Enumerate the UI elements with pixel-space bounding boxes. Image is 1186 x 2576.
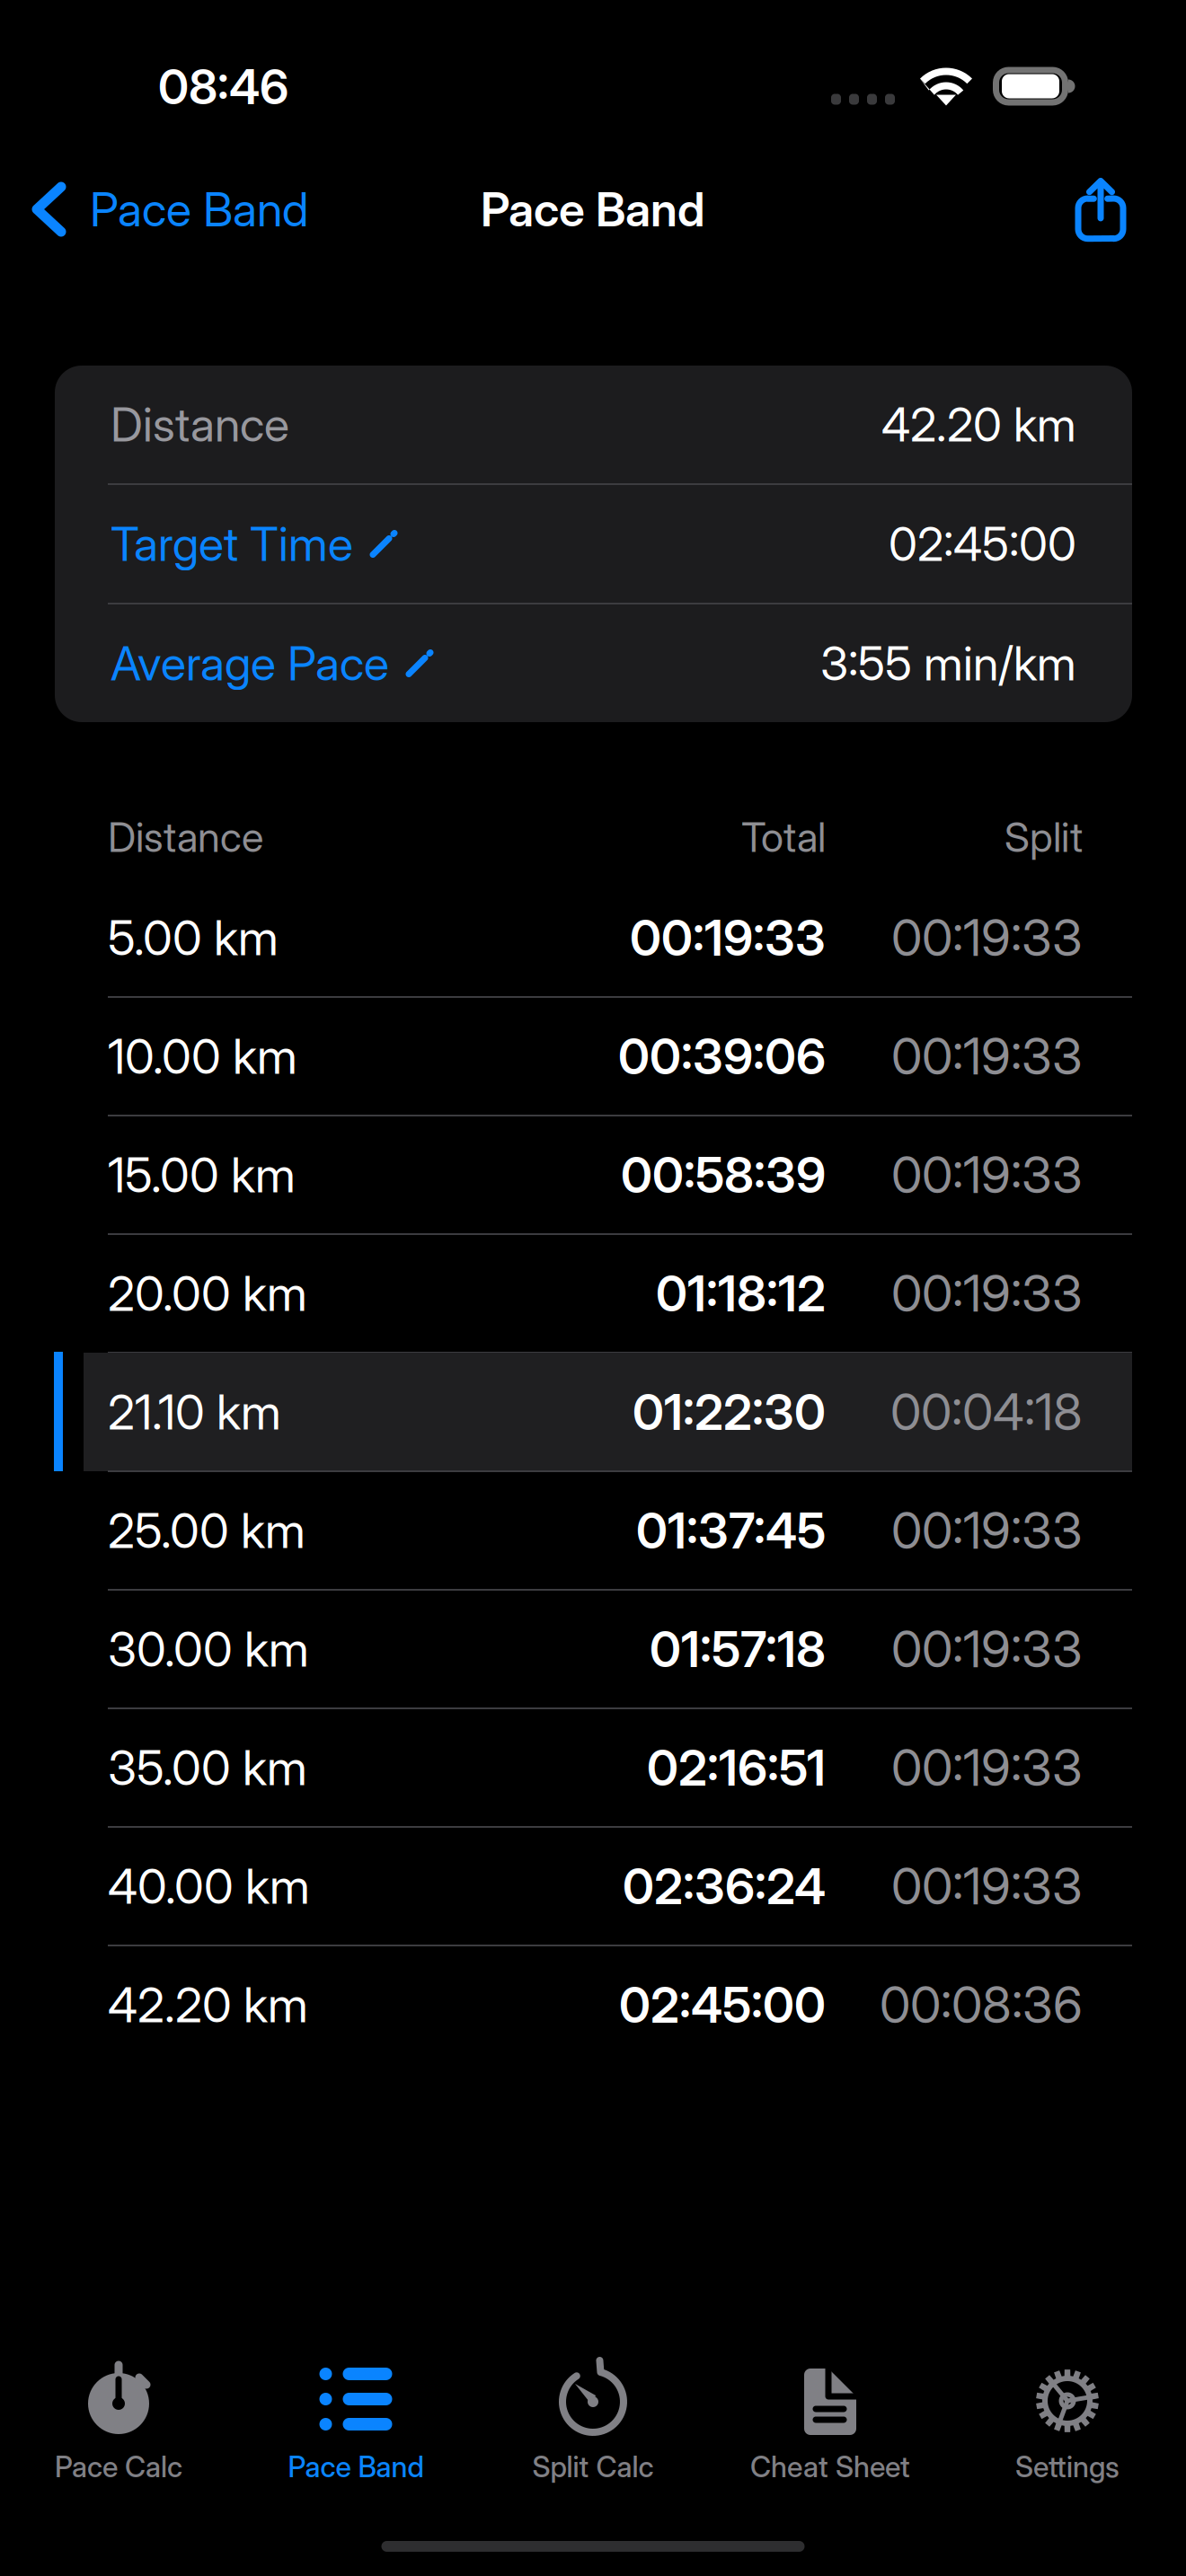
button[interactable]: 40.00 km (84, 1828, 1132, 1945)
button[interactable]: 30.00 km (84, 1591, 1132, 1707)
button[interactable]: Target Time (55, 485, 1132, 603)
button[interactable]: Pace Band (237, 2354, 474, 2498)
staticText: 01:37:45 (636, 1501, 826, 1560)
staticText: 01:18:12 (656, 1264, 826, 1323)
staticText: 00:19:33 (891, 1026, 1083, 1087)
staticText: 02:36:24 (623, 1856, 826, 1916)
staticText: 00:19:33 (891, 907, 1083, 968)
staticText: 00:19:33 (891, 1737, 1083, 1798)
button[interactable]: 5.00 km (84, 879, 1132, 996)
staticText: Split (1005, 812, 1083, 862)
button[interactable]: 21.10 km (84, 1354, 1132, 1470)
staticText: 00:19:33 (891, 1856, 1083, 1917)
staticText: 10.00 km (108, 1027, 297, 1085)
staticText: 3:55 min/km (820, 635, 1076, 692)
staticText: 5.00 km (108, 909, 279, 967)
staticText: Distance (111, 396, 289, 453)
staticText: Pace Band (90, 181, 308, 237)
staticText: 42.20 km (881, 396, 1076, 453)
button[interactable]: 20.00 km (84, 1235, 1132, 1352)
staticText: 25.00 km (108, 1501, 305, 1559)
button[interactable]: Average Pace (55, 604, 1132, 722)
staticText: 42.20 km (108, 1976, 308, 2034)
button[interactable]: 15.00 km (84, 1116, 1132, 1233)
staticText: 30.00 km (108, 1620, 309, 1678)
staticText: 00:19:33 (891, 1263, 1083, 1324)
staticText: Split Calc (532, 2449, 654, 2484)
staticText: Pace Band (288, 2449, 424, 2484)
staticText: 00:39:06 (618, 1027, 826, 1086)
button[interactable]: 35.00 km (84, 1709, 1132, 1826)
staticText: 00:19:33 (891, 1619, 1083, 1680)
staticText: 21.10 km (108, 1383, 281, 1441)
button[interactable]: Split Calc (474, 2354, 712, 2498)
button[interactable]: Share (1042, 150, 1186, 269)
staticText: 15.00 km (108, 1146, 296, 1204)
staticText: Pace Band (481, 181, 705, 237)
staticText: 00:04:18 (890, 1382, 1083, 1442)
staticText: 01:22:30 (633, 1382, 826, 1442)
staticText: Total (741, 812, 826, 862)
staticText: 02:45:00 (889, 516, 1076, 572)
staticText: 35.00 km (108, 1739, 307, 1797)
staticText: 40.00 km (108, 1857, 310, 1915)
staticText: 00:08:36 (880, 1974, 1083, 2035)
staticText: 08:46 (158, 58, 288, 116)
button[interactable]: 25.00 km (84, 1472, 1132, 1589)
button[interactable]: 42.20 km (84, 1946, 1132, 2063)
staticText: Target Time (111, 516, 353, 572)
button[interactable]: Pace Calc (0, 2354, 237, 2498)
staticText: 20.00 km (108, 1264, 307, 1322)
staticText: 00:19:33 (891, 1500, 1083, 1561)
staticText: Distance (108, 812, 263, 862)
staticText: Cheat Sheet (750, 2449, 910, 2484)
button[interactable]: Cheat Sheet (712, 2354, 949, 2498)
button[interactable]: Pace Band (0, 150, 330, 269)
staticText: 02:45:00 (619, 1975, 826, 2034)
staticText: Pace Calc (55, 2449, 182, 2484)
staticText: Settings (1015, 2449, 1120, 2484)
staticText: 02:16:51 (647, 1738, 826, 1797)
button[interactable]: Settings (949, 2354, 1186, 2498)
staticText: 00:19:33 (891, 1144, 1083, 1205)
staticText: Average Pace (111, 635, 389, 692)
staticText: 00:19:33 (630, 908, 826, 967)
staticText: 00:58:39 (621, 1145, 826, 1204)
staticText: 01:57:18 (650, 1619, 826, 1679)
button[interactable]: 10.00 km (84, 998, 1132, 1115)
